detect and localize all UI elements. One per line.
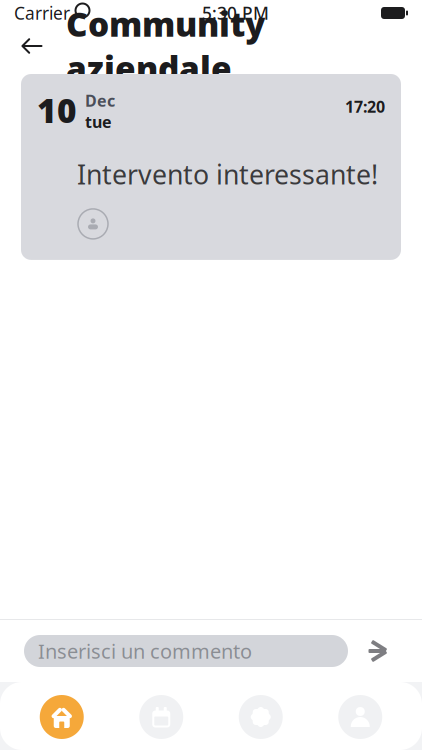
button[interactable]: Back: [12, 26, 52, 66]
staticText: Dec: [85, 90, 115, 111]
button[interactable]: Inserisci un commento: [24, 635, 348, 667]
button[interactable]: Profile: [310, 692, 410, 742]
staticText: tue: [85, 111, 112, 132]
staticText: 17:20: [345, 96, 385, 117]
button[interactable]: Home: [12, 692, 111, 742]
staticText: Inserisci un commento: [38, 638, 252, 664]
staticText: Intervento interessante!: [77, 156, 378, 192]
button[interactable]: Calendar: [111, 692, 211, 742]
button[interactable]: Send comment: [362, 633, 398, 669]
staticText: 5:30 PM: [202, 1, 269, 24]
staticText: Community aziendale: [66, 2, 265, 90]
button[interactable]: Favourites: [211, 692, 310, 742]
staticText: Carrier: [14, 1, 70, 24]
staticText: 10: [37, 88, 77, 132]
